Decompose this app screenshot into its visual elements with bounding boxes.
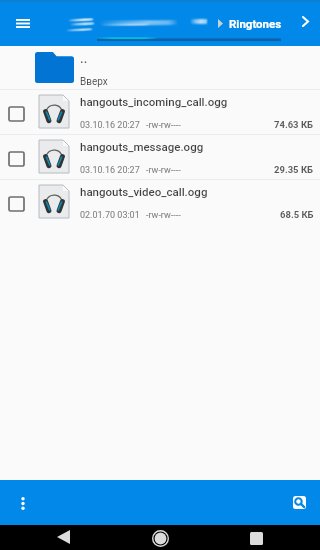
staticText: Вверх	[80, 76, 108, 88]
button[interactable]: Select hangouts_incoming_call.ogg	[4, 102, 28, 126]
button[interactable]: Select hangouts_message.ogg	[0, 135, 320, 179]
staticText: 74.63 КБ	[274, 119, 314, 130]
staticText: hangouts_message.ogg	[80, 140, 204, 153]
button[interactable]: Home	[148, 526, 172, 550]
button[interactable]: Select hangouts_video_call.ogg	[4, 192, 28, 216]
staticText: ..	[80, 51, 88, 66]
staticText: 03.10.16 20:27	[80, 120, 140, 131]
button[interactable]: Recent apps	[244, 526, 268, 550]
staticText: 29.35 КБ	[274, 164, 314, 175]
button[interactable]: ..	[0, 46, 320, 89]
staticText: -rw-rw----	[146, 210, 181, 221]
staticText: 03.10.16 20:27	[80, 165, 140, 176]
button[interactable]: Search	[287, 490, 311, 514]
staticText: hangouts_incoming_call.ogg	[80, 95, 228, 108]
staticText: 02.01.70 03:01	[80, 210, 140, 221]
staticText: Ringtones	[229, 17, 282, 30]
button[interactable]: More options	[11, 491, 35, 515]
staticText: -rw-rw----	[146, 165, 181, 176]
button[interactable]: Scroll path forward	[294, 10, 316, 32]
button[interactable]: Select hangouts_video_call.ogg	[0, 180, 320, 224]
button[interactable]: Select hangouts_incoming_call.ogg	[0, 90, 320, 134]
staticText: 68.5 КБ	[280, 209, 314, 220]
button[interactable]: Navigation menu	[9, 9, 37, 37]
button[interactable]: Select hangouts_message.ogg	[4, 147, 28, 171]
staticText: hangouts_video_call.ogg	[80, 185, 208, 198]
staticText: -rw-rw----	[146, 120, 181, 131]
button[interactable]: Back	[51, 525, 75, 549]
